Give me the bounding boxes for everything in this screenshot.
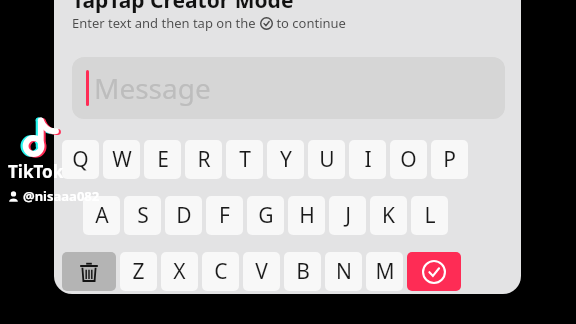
staticText: V xyxy=(255,257,268,286)
button[interactable]: Message xyxy=(72,57,505,119)
button[interactable]: G xyxy=(247,196,284,235)
button[interactable]: D xyxy=(165,196,202,235)
staticText: Z xyxy=(132,257,145,286)
button[interactable]: K xyxy=(370,196,407,235)
staticText: R xyxy=(197,145,211,174)
button[interactable]: P xyxy=(431,140,468,179)
staticText: S xyxy=(137,201,149,230)
button[interactable]: U xyxy=(308,140,345,179)
staticText: P xyxy=(443,145,456,174)
button[interactable]: B xyxy=(284,252,321,291)
staticText: N xyxy=(336,257,352,286)
button[interactable]: F xyxy=(206,196,243,235)
staticText: C xyxy=(214,257,228,286)
button[interactable]: S xyxy=(124,196,161,235)
staticText: B xyxy=(296,257,310,286)
button[interactable]: L xyxy=(411,196,448,235)
staticText: @nisaaa082 xyxy=(23,187,100,205)
button[interactable]: A xyxy=(83,196,120,235)
staticText: O xyxy=(400,145,417,174)
staticText: Enter text and then tap on the xyxy=(72,14,260,32)
staticText: A xyxy=(95,201,109,230)
button[interactable]: Z xyxy=(120,252,157,291)
button[interactable]: I xyxy=(349,140,386,179)
staticText: L xyxy=(424,201,436,230)
button[interactable]: C xyxy=(202,252,239,291)
button[interactable]: Confirm xyxy=(407,252,461,291)
staticText: Q xyxy=(72,145,89,174)
button[interactable]: O xyxy=(390,140,427,179)
staticText: Y xyxy=(280,145,292,174)
staticText: E xyxy=(157,145,169,174)
button[interactable]: W xyxy=(103,140,140,179)
button[interactable]: X xyxy=(161,252,198,291)
staticText: J xyxy=(345,201,351,230)
staticText: W xyxy=(112,145,132,174)
staticText: X xyxy=(173,257,186,286)
button[interactable]: Y xyxy=(267,140,304,179)
button[interactable]: N xyxy=(325,252,362,291)
button[interactable]: Q xyxy=(62,140,99,179)
button[interactable]: M xyxy=(366,252,403,291)
staticText: G xyxy=(258,201,274,230)
staticText: to continue xyxy=(273,14,346,32)
staticText: Message xyxy=(94,69,211,107)
button[interactable]: E xyxy=(144,140,181,179)
staticText: H xyxy=(299,201,315,230)
staticText: F xyxy=(219,201,230,230)
staticText: I xyxy=(364,145,372,174)
staticText: D xyxy=(176,201,192,230)
staticText: T xyxy=(239,145,251,174)
staticText: K xyxy=(382,201,395,230)
button[interactable]: J xyxy=(329,196,366,235)
button[interactable]: H xyxy=(288,196,325,235)
staticText: M xyxy=(375,257,395,286)
button[interactable]: Delete xyxy=(62,252,116,291)
button[interactable]: R xyxy=(185,140,222,179)
button[interactable]: V xyxy=(243,252,280,291)
staticText: U xyxy=(319,145,335,174)
staticText: TikTok xyxy=(8,160,64,183)
button[interactable]: T xyxy=(226,140,263,179)
staticText: TapTap Creator Mode xyxy=(72,0,294,15)
